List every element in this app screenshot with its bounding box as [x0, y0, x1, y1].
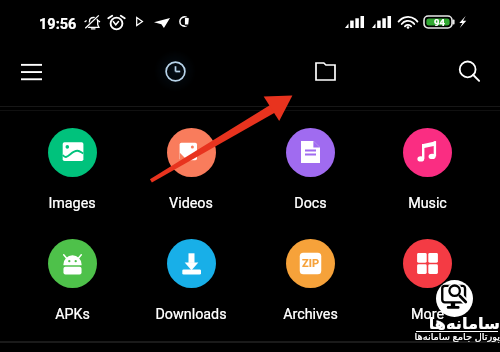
button[interactable]: APKs	[15, 239, 129, 323]
staticText: Music	[408, 195, 447, 212]
staticText: ZIP	[302, 257, 319, 270]
button[interactable]: Recent files	[153, 49, 197, 93]
staticText: سامانه‌ها	[398, 314, 500, 333]
staticText: پورتال جامع سامانه‌ها	[398, 330, 500, 343]
button[interactable]: Docs	[253, 128, 367, 212]
staticText: More	[411, 306, 444, 323]
button[interactable]: More	[370, 239, 484, 323]
button[interactable]: Images	[15, 128, 129, 212]
button[interactable]: Music	[370, 128, 484, 212]
button[interactable]: Search	[446, 49, 490, 93]
staticText: Archives	[283, 306, 338, 323]
staticText: Downloads	[155, 306, 227, 323]
staticText: 94	[434, 17, 445, 28]
button[interactable]: Menu	[9, 49, 53, 93]
button[interactable]: ZIP	[253, 239, 367, 323]
button[interactable]: Downloads	[134, 239, 248, 323]
staticText: Videos	[169, 195, 213, 212]
button[interactable]: Videos	[134, 128, 248, 212]
staticText: 19:56	[39, 16, 77, 33]
staticText: APKs	[55, 306, 90, 323]
button[interactable]: Folders	[303, 49, 347, 93]
staticText: Docs	[294, 195, 327, 212]
staticText: Images	[48, 195, 96, 212]
